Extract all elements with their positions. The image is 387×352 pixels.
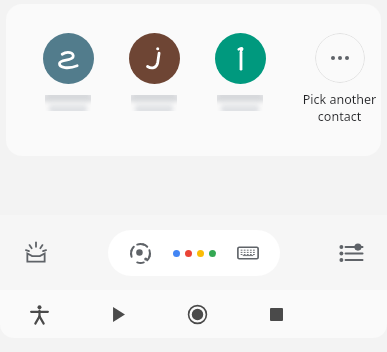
button[interactable]: Recent apps [237, 290, 316, 338]
button[interactable] [42, 33, 94, 111]
button[interactable]: Home [158, 290, 237, 338]
button[interactable]: Back [79, 290, 158, 338]
other: Pick another contact [315, 33, 365, 83]
button[interactable]: Google Assistant [172, 231, 216, 275]
button[interactable]: Accessibility [0, 290, 79, 338]
button[interactable]: Settings [331, 233, 371, 273]
button[interactable]: Google Lens [120, 233, 160, 273]
button[interactable]: Keyboard [228, 233, 268, 273]
button[interactable]: Stickers [16, 233, 56, 273]
button[interactable]: Pick another contact [298, 33, 381, 125]
button[interactable] [128, 33, 180, 111]
staticText: Pick another contact [298, 91, 381, 125]
button[interactable] [214, 33, 266, 111]
